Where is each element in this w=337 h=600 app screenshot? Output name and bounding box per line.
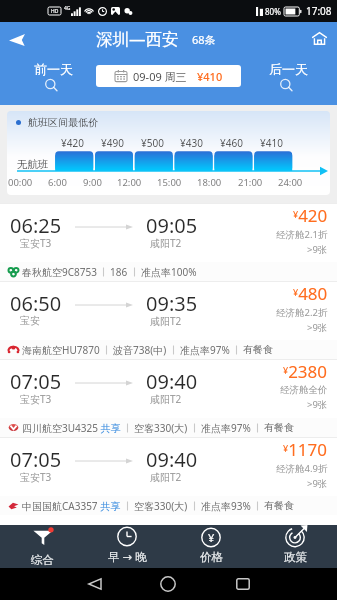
staticText: 春秋航空9C8753 [22,265,97,279]
staticText: ¥420 [61,136,84,150]
button[interactable]: 09-09 周三 [96,65,241,87]
staticText: 有餐食 [264,499,294,512]
staticText: 9:00 [83,176,102,189]
staticText: 空客330(大) [134,499,188,513]
staticText: 09:40 [146,368,198,395]
staticText: 波音738(中) [113,343,167,357]
button[interactable]: 06:50 [0,281,337,359]
staticText: 4G [64,5,71,12]
staticText: 准点率97% [201,421,251,435]
staticText: 航班区间最低价 [28,116,98,129]
staticText: 09:40 [146,446,198,473]
staticText: 准点率97% [180,343,230,357]
staticText: ¥ [208,530,215,545]
staticText: ¥1170 [283,438,328,461]
staticText: ¥490 [101,136,124,150]
staticText: ¥460 [220,136,243,150]
staticText: 海南航空HU7870 [22,343,100,357]
staticText: 空客330(大) [134,421,188,435]
staticText: 深圳—西安 [96,27,179,50]
staticText: 有餐食 [264,421,294,434]
staticText: 24:00 [278,176,303,189]
button[interactable]: 综合 [0,525,85,568]
staticText: ¥500 [141,136,164,150]
staticText: HD [51,8,59,15]
staticText: 21:00 [238,176,263,189]
staticText: 四川航空3U4325 共享 [22,421,121,435]
staticText: 政策 [284,550,307,564]
staticText: 经济舱4.9折 [276,462,328,475]
staticText: 经济舱全价 [280,384,328,396]
staticText: 09-09 周三 [133,69,187,84]
staticText: 中国国航CA3357 共享 [22,499,121,513]
staticText: >9张 [307,398,328,411]
staticText: 80% [265,6,281,17]
staticText: 咸阳T2 [150,392,182,406]
staticText: 咸阳T2 [150,470,182,484]
staticText: 07:05 [10,446,62,473]
staticText: 经济舱2.2折 [276,306,328,319]
staticText: 准点率93% [201,499,251,513]
staticText: 宝安 [20,314,40,327]
staticText: 价格 [200,550,223,564]
staticText: 后一天 [269,61,308,77]
staticText: 咸阳T2 [150,236,182,250]
staticText: ¥410 [260,136,283,150]
staticText: 07:05 [10,368,62,395]
button[interactable]: 早 → 晚 [85,525,169,568]
staticText: 宝安T3 [20,392,52,406]
button[interactable]: 后一天 [269,61,308,91]
button[interactable]: 06:25 [0,203,337,281]
button[interactable]: 首页 [304,23,334,53]
staticText: 68条 [192,32,216,47]
staticText: 15:00 [157,176,182,189]
button[interactable]: 主页 [147,568,189,600]
staticText: 准点率100% [141,265,197,279]
staticText: ¥480 [293,282,328,305]
staticText: >9张 [307,477,328,490]
staticText: ¥410 [197,69,223,84]
staticText: 宝安T3 [20,470,52,484]
staticText: 00:00 [8,176,33,189]
staticText: 06:50 [10,290,62,317]
button[interactable]: 返回 [0,25,33,55]
staticText: >9张 [307,243,328,256]
staticText: 18:00 [197,176,222,189]
button[interactable]: 最近任务 [222,568,264,600]
staticText: 17:08 [306,4,332,18]
button[interactable]: 政策 [253,525,337,568]
staticText: 经济舱2.1折 [276,228,328,241]
staticText: ¥420 [293,204,328,227]
staticText: >9张 [307,321,328,334]
staticText: 咸阳T2 [150,314,182,328]
button[interactable]: ¥ [169,525,253,568]
staticText: 6:00 [48,176,67,189]
button[interactable]: 返回 [73,568,115,600]
staticText: ¥2380 [283,360,328,383]
staticText: 综合 [31,553,54,567]
staticText: 12:00 [117,176,142,189]
staticText: 无航班 [17,158,49,171]
staticText: 宝安T3 [20,236,52,250]
button[interactable]: 前一天 [34,61,73,91]
button[interactable]: 07:05 [0,359,337,437]
staticText: 早 → 晚 [108,549,147,565]
staticText: 186 [110,265,128,279]
staticText: 有餐食 [243,343,273,356]
staticText: 前一天 [34,61,73,77]
staticText: ¥430 [180,136,203,150]
staticText: 09:35 [146,290,198,317]
button[interactable]: 07:05 [0,437,337,515]
staticText: 09:05 [146,212,198,239]
staticText: 06:25 [10,212,62,239]
